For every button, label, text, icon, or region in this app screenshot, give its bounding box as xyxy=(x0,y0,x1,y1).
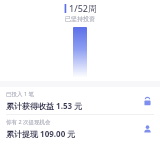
staticText: 累计获得收益 1.53 元 xyxy=(6,100,83,111)
button[interactable]: 你有 2 次提现机会 xyxy=(0,115,160,142)
staticText: 你有 2 次提现机会 xyxy=(6,118,51,126)
staticText: 已投入 1 笔 xyxy=(6,90,35,98)
staticText: 1/52周 xyxy=(69,2,97,14)
button[interactable]: 已投入 1 笔 xyxy=(0,87,160,114)
button[interactable]: Earnings detail xyxy=(140,94,154,108)
button[interactable]: Withdraw detail xyxy=(140,122,154,136)
staticText: 累计提现 109.00 元 xyxy=(6,128,76,139)
staticText: 已坚持投资 xyxy=(65,15,95,23)
